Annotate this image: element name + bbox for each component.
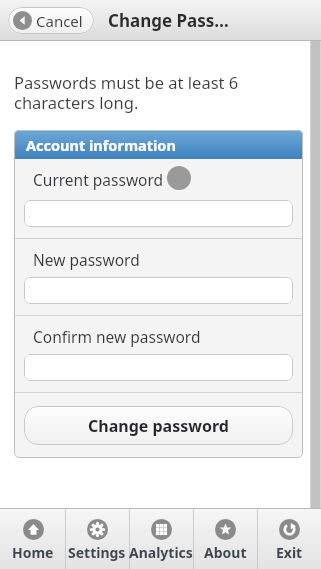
staticText: Home (12, 543, 54, 562)
other: About (215, 519, 236, 540)
staticText: Analytics (129, 543, 193, 562)
button[interactable]: Settings (65, 509, 129, 569)
staticText: Passwords must be at least 6 characters … (14, 71, 299, 114)
other: Settings (87, 519, 108, 540)
staticText: About (204, 543, 247, 562)
button[interactable]: Analytics (129, 509, 193, 569)
button[interactable]: Change password (24, 406, 293, 445)
staticText: Current password (33, 169, 164, 190)
button[interactable] (24, 354, 293, 381)
staticText: Cancel (36, 11, 83, 31)
button[interactable] (24, 200, 293, 227)
staticText: Exit (276, 543, 303, 562)
button[interactable]: Cancel (8, 7, 94, 34)
other: Analytics (151, 519, 172, 540)
button[interactable]: Home (0, 509, 65, 569)
staticText: New password (33, 249, 140, 270)
button[interactable]: Exit (257, 509, 321, 569)
staticText: Settings (68, 543, 126, 562)
staticText: Confirm new password (33, 326, 201, 347)
staticText: Change password (88, 415, 229, 437)
other: Home (23, 519, 44, 540)
button[interactable]: About (193, 509, 257, 569)
other: Exit (279, 519, 300, 540)
staticText: Account information (26, 135, 176, 155)
button[interactable] (24, 277, 293, 304)
staticText: Change Pass… (108, 9, 229, 32)
